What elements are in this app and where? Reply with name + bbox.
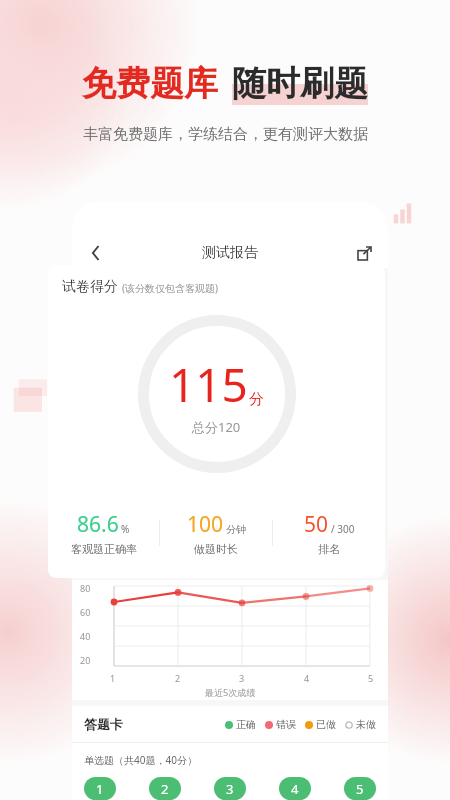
- button[interactable]: 86.6: [48, 510, 159, 556]
- staticText: 4: [291, 780, 299, 798]
- staticText: 3: [226, 780, 234, 798]
- staticText: 排名: [318, 542, 340, 556]
- staticText: 正确: [236, 718, 256, 731]
- button[interactable]: 错误: [265, 718, 296, 731]
- staticText: 免费题库: [82, 62, 218, 105]
- button[interactable]: Back: [84, 241, 108, 265]
- button[interactable]: 3: [214, 777, 246, 800]
- staticText: 100: [187, 510, 224, 539]
- staticText: 3: [239, 672, 245, 684]
- staticText: 5: [368, 672, 374, 684]
- staticText: (该分数仅包含客观题): [122, 281, 218, 295]
- button[interactable]: 100: [160, 510, 272, 556]
- button[interactable]: 50: [273, 510, 385, 556]
- button[interactable]: 未做: [345, 718, 376, 731]
- staticText: / 300: [331, 522, 355, 536]
- staticText: 最近5次成绩: [205, 686, 256, 698]
- staticText: 已做: [316, 718, 336, 731]
- button[interactable]: 1: [84, 777, 116, 800]
- staticText: 丰富免费题库，学练结合，更有测评大数据: [83, 125, 368, 144]
- staticText: 115: [169, 353, 248, 416]
- staticText: 2: [161, 780, 169, 798]
- button[interactable]: 5: [344, 777, 376, 800]
- staticText: 客观题正确率: [71, 542, 137, 556]
- staticText: 未做: [356, 718, 376, 731]
- button[interactable]: 已做: [305, 718, 336, 731]
- staticText: 试卷得分: [62, 278, 118, 296]
- staticText: 50: [304, 510, 329, 539]
- staticText: 86.6: [77, 510, 119, 539]
- staticText: 2: [175, 672, 181, 684]
- button[interactable]: 正确: [225, 718, 256, 731]
- staticText: 1: [110, 672, 116, 684]
- staticText: %: [121, 522, 130, 536]
- staticText: 答题卡: [84, 716, 123, 732]
- staticText: 1: [96, 780, 104, 798]
- staticText: 4: [304, 672, 310, 684]
- staticText: 分钟: [226, 523, 246, 536]
- staticText: 40: [80, 630, 91, 642]
- staticText: 测试报告: [202, 244, 258, 262]
- staticText: 做题时长: [194, 542, 238, 556]
- staticText: 总分120: [192, 418, 241, 436]
- staticText: 分: [249, 390, 264, 409]
- staticText: 5: [356, 780, 364, 798]
- button[interactable]: 4: [279, 777, 311, 800]
- staticText: 20: [80, 654, 91, 666]
- staticText: 随时刷题: [232, 62, 368, 105]
- staticText: 80: [80, 582, 91, 594]
- staticText: 错误: [276, 718, 296, 731]
- button[interactable]: 2: [149, 777, 181, 800]
- button[interactable]: Share: [352, 241, 376, 265]
- staticText: 60: [80, 606, 91, 618]
- staticText: 单选题（共40题，40分）: [84, 753, 197, 767]
